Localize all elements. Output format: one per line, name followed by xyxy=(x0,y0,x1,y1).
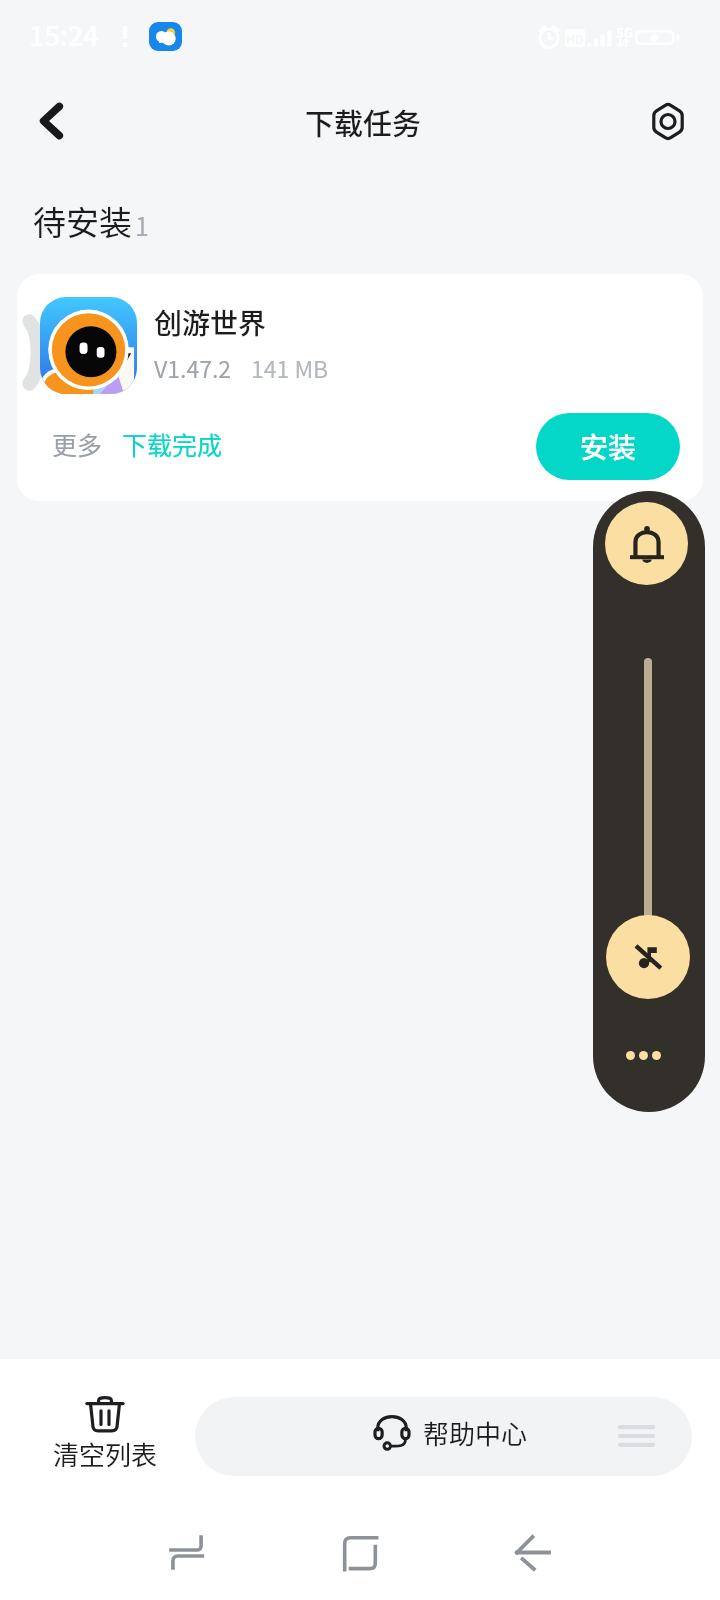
button[interactable]: Ringer mode xyxy=(605,502,688,585)
button[interactable]: 更多 xyxy=(44,418,111,470)
staticText: 下载任务 xyxy=(305,101,422,143)
staticText: 帮助中心 xyxy=(423,1414,528,1452)
staticText: 15:24 xyxy=(29,15,99,54)
staticText: 安装 xyxy=(580,426,637,467)
button[interactable]: Back xyxy=(498,1524,570,1580)
staticText: 1 xyxy=(135,207,149,243)
button[interactable]: Menu xyxy=(620,1425,653,1447)
button[interactable]: 创游世界 xyxy=(17,274,703,501)
staticText: 5G xyxy=(616,23,633,42)
button[interactable]: 帮助中心 xyxy=(195,1397,692,1476)
staticText: 下载完成 xyxy=(122,426,223,462)
button[interactable]: 安装 xyxy=(536,413,680,480)
button[interactable]: Home xyxy=(324,1524,396,1580)
button[interactable]: Mute xyxy=(606,915,690,999)
button[interactable]: Back xyxy=(16,85,88,157)
staticText: 清空列表 xyxy=(53,1435,158,1473)
staticText: V1.47.2 xyxy=(154,351,232,384)
staticText: 更多 xyxy=(52,426,103,462)
button[interactable]: Settings xyxy=(632,85,704,157)
button[interactable]: 下载完成 xyxy=(114,418,231,470)
staticText: 待安装 xyxy=(33,197,132,245)
button[interactable]: 清空列表 xyxy=(45,1394,165,1473)
staticText: 创游世界 xyxy=(154,302,267,343)
staticText: 141 MB xyxy=(251,351,329,384)
button[interactable]: Recents xyxy=(150,1524,222,1580)
button[interactable]: More options xyxy=(626,1041,672,1069)
staticText: HD xyxy=(566,30,584,47)
